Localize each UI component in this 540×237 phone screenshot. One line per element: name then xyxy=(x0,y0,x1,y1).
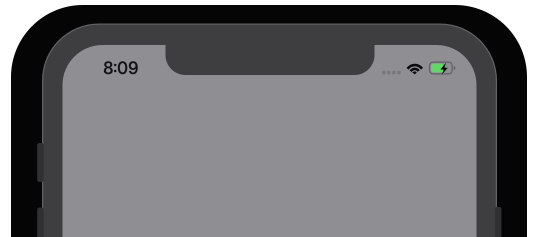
staticText: 8:09 xyxy=(103,58,138,78)
